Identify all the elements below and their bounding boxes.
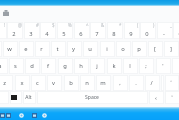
- staticText: b: [69, 79, 73, 87]
- button[interactable]: ˅: [165, 91, 179, 104]
- button[interactable]: l: [123, 58, 138, 74]
- button[interactable]: 4: [40, 22, 56, 39]
- button[interactable]: ;: [139, 58, 154, 74]
- button[interactable]: 2: [7, 22, 23, 39]
- button[interactable]: s: [9, 58, 24, 74]
- staticText: ˄: [170, 79, 172, 87]
- button[interactable]: r: [35, 41, 50, 57]
- button[interactable]: d: [25, 58, 40, 74]
- staticText: g: [63, 62, 67, 70]
- button[interactable]: [172, 58, 179, 74]
- staticText: 4: [45, 30, 49, 38]
- staticText: 8: [112, 30, 116, 38]
- staticText: #: [36, 22, 39, 28]
- staticText: u: [88, 45, 92, 53]
- button[interactable]: w: [3, 41, 18, 57]
- button[interactable]: u: [83, 41, 98, 57]
- button[interactable]: g: [58, 58, 73, 74]
- staticText: _: [170, 22, 172, 28]
- button[interactable]: 5: [57, 22, 73, 39]
- button[interactable]: /: [145, 75, 160, 91]
- button[interactable]: h: [74, 58, 89, 74]
- button[interactable]: ]: [164, 41, 179, 57]
- button[interactable]: Store: [32, 113, 37, 118]
- staticText: a: [0, 62, 2, 70]
- button[interactable]: v: [47, 75, 62, 91]
- button[interactable]: j: [90, 58, 105, 74]
- staticText: $: [52, 22, 55, 28]
- button[interactable]: e: [19, 41, 34, 57]
- button[interactable]: k: [107, 58, 122, 74]
- button[interactable]: ‹: [149, 91, 164, 104]
- staticText: x: [20, 79, 24, 87]
- button[interactable]: 7: [90, 22, 106, 39]
- button[interactable]: p: [132, 41, 147, 57]
- button[interactable]: Search: [19, 113, 24, 118]
- button[interactable]: x: [15, 75, 30, 91]
- staticText: [: [154, 45, 156, 53]
- button[interactable]: [10, 91, 22, 104]
- staticText: ,: [119, 79, 121, 87]
- button[interactable]: m: [96, 75, 111, 91]
- button[interactable]: Keyboard settings: [3, 10, 9, 16]
- button[interactable]: b: [64, 75, 79, 91]
- button[interactable]: 3: [24, 22, 40, 39]
- staticText: l: [129, 62, 131, 70]
- staticText: ;: [145, 62, 147, 70]
- staticText: ): [153, 22, 155, 28]
- button[interactable]: 1: [0, 22, 7, 39]
- staticText: ]: [170, 45, 172, 53]
- button[interactable]: q: [0, 41, 2, 57]
- button[interactable]: Space: [37, 91, 148, 104]
- staticText: ^: [86, 22, 89, 28]
- button[interactable]: 8: [107, 22, 123, 39]
- staticText: =: [178, 30, 179, 38]
- button[interactable]: ˄: [165, 75, 179, 91]
- button[interactable]: [: [148, 41, 163, 57]
- button[interactable]: c: [31, 75, 46, 91]
- button[interactable]: ': [156, 58, 171, 74]
- staticText: s: [14, 62, 17, 70]
- staticText: &: [101, 22, 105, 28]
- button[interactable]: Settings: [42, 113, 47, 118]
- button[interactable]: 6: [74, 22, 90, 39]
- staticText: 9: [129, 30, 133, 38]
- button[interactable]: -: [157, 22, 173, 39]
- button[interactable]: o: [116, 41, 131, 57]
- staticText: e: [24, 45, 28, 53]
- button[interactable]: ,: [113, 75, 128, 91]
- button[interactable]: =: [173, 22, 179, 39]
- button[interactable]: Start: [0, 113, 5, 118]
- staticText: /: [150, 79, 153, 87]
- staticText: (: [137, 22, 139, 28]
- button[interactable]: n: [80, 75, 95, 91]
- staticText: ‹: [155, 94, 157, 102]
- button[interactable]: a: [0, 58, 8, 74]
- button[interactable]: [0, 91, 9, 104]
- button[interactable]: [161, 75, 164, 91]
- staticText: ˅: [171, 94, 173, 102]
- staticText: p: [137, 45, 141, 53]
- staticText: c: [36, 79, 39, 87]
- staticText: j: [96, 62, 98, 70]
- staticText: 5: [62, 30, 66, 38]
- button[interactable]: i: [100, 41, 115, 57]
- staticText: k: [112, 62, 116, 70]
- staticText: n: [85, 79, 89, 87]
- button[interactable]: z: [0, 75, 13, 91]
- button[interactable]: File Explorer: [6, 113, 11, 118]
- staticText: ': [162, 62, 164, 70]
- button[interactable]: 0: [140, 22, 156, 39]
- button[interactable]: Alt: [23, 91, 36, 104]
- button[interactable]: .: [129, 75, 144, 91]
- staticText: Space: [85, 94, 99, 101]
- staticText: z: [3, 79, 6, 87]
- button[interactable]: t: [51, 41, 66, 57]
- staticText: m: [100, 79, 106, 87]
- button[interactable]: 9: [124, 22, 140, 39]
- button[interactable]: y: [67, 41, 82, 57]
- staticText: o: [121, 45, 125, 53]
- button[interactable]: f: [41, 58, 56, 74]
- staticText: r: [40, 45, 43, 53]
- staticText: f: [47, 62, 49, 70]
